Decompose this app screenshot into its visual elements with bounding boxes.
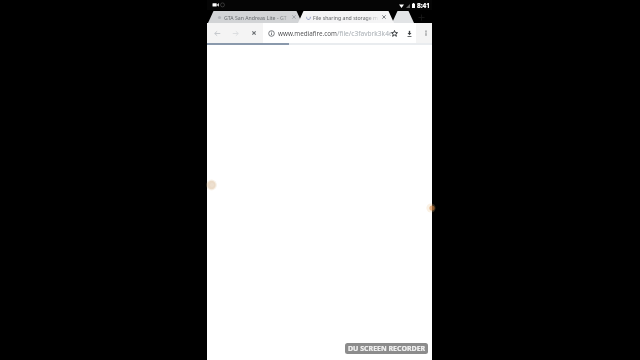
button[interactable]: Download xyxy=(402,23,417,43)
staticText: /file/c3favbrk3k4e xyxy=(337,29,391,38)
button[interactable]: Back xyxy=(210,23,225,43)
button[interactable]: Forward xyxy=(228,23,243,43)
staticText: File sharing and storage m xyxy=(313,14,378,21)
staticText: www.mediafire.com xyxy=(278,29,337,38)
button[interactable]: DU Screen Recorder watermark xyxy=(345,343,428,354)
button[interactable]: Bookmark xyxy=(387,23,402,43)
button[interactable]: Close tab GTA San Andreas Lite xyxy=(291,14,297,20)
staticText: DU SCREEN RECORDER xyxy=(348,344,426,354)
button[interactable]: Stop loading xyxy=(246,23,261,43)
button[interactable]: Close active tab xyxy=(381,14,387,20)
staticText: GTA San Andreas Lite - GT xyxy=(224,14,287,21)
button[interactable]: New tab xyxy=(418,14,425,21)
button[interactable]: Address bar xyxy=(263,23,416,43)
staticText: 8:41 xyxy=(417,1,430,10)
button[interactable]: Tab File sharing and storage xyxy=(306,13,380,21)
button[interactable]: Tab GTA San Andreas Lite xyxy=(217,13,293,21)
button[interactable]: More options xyxy=(418,23,433,43)
